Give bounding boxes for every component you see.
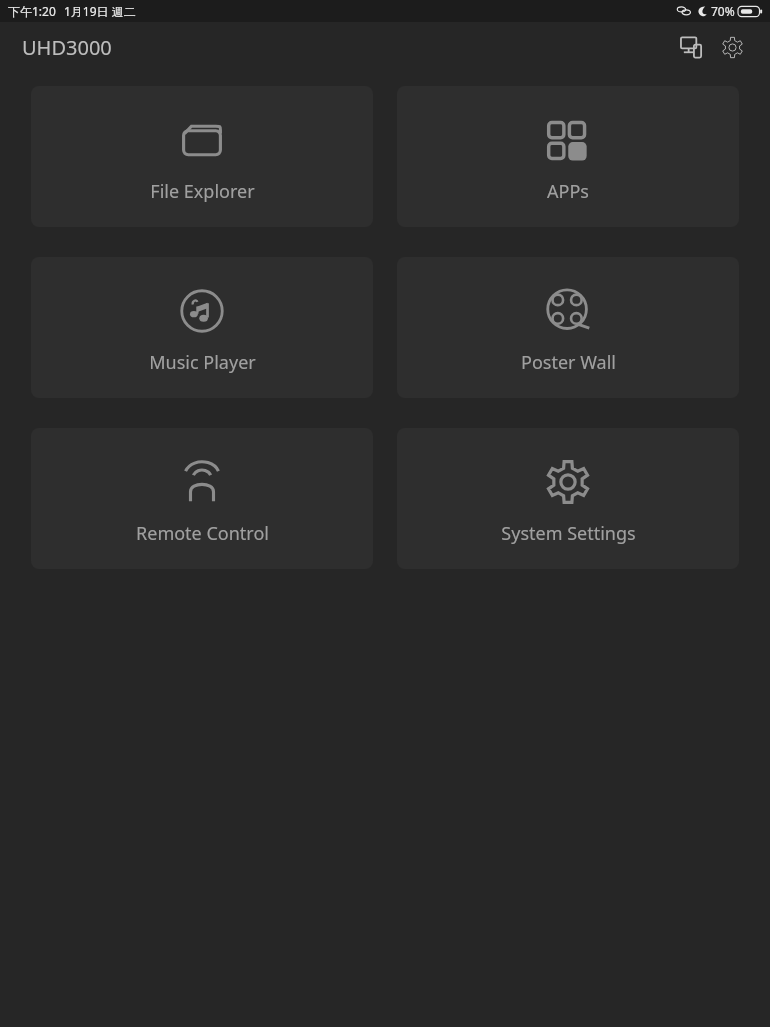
staticText: Remote Control <box>136 521 269 546</box>
staticText: UHD3000 <box>22 34 112 61</box>
button[interactable]: Music Player <box>31 257 373 398</box>
staticText: Poster Wall <box>521 350 616 375</box>
staticText: File Explorer <box>150 179 255 204</box>
button[interactable]: Poster Wall <box>397 257 739 398</box>
staticText: 70% <box>711 3 735 19</box>
button[interactable]: APPs <box>397 86 739 227</box>
staticText: 下午1:20 <box>8 3 56 19</box>
staticText: 1月19日 週二 <box>64 3 136 19</box>
button[interactable]: File Explorer <box>31 86 373 227</box>
staticText: APPs <box>547 179 589 204</box>
button[interactable]: Cast screen <box>674 29 710 65</box>
staticText: Music Player <box>149 350 256 375</box>
button[interactable]: System Settings <box>397 428 739 569</box>
staticText: System Settings <box>501 521 636 546</box>
button[interactable]: Remote Control <box>31 428 373 569</box>
button[interactable]: Settings <box>714 29 750 65</box>
